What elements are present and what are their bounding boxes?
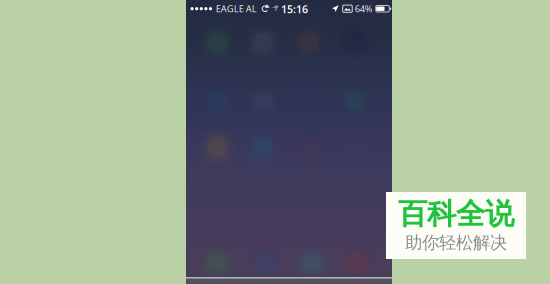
staticText: 百科全说 [398,196,514,232]
staticText: 15:16 [281,2,308,16]
staticText: EAGLE AL [216,2,257,15]
staticText: 64% [355,2,373,15]
staticText: 助你轻松解决 [405,232,507,253]
